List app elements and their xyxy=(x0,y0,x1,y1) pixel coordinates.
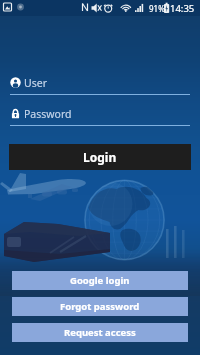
staticText: Password xyxy=(24,107,72,121)
button[interactable]: Request access xyxy=(12,323,188,342)
staticText: 91% xyxy=(149,3,165,14)
staticText: Login xyxy=(83,149,117,165)
staticText: Request access xyxy=(64,326,136,339)
button[interactable]: Forgot password xyxy=(12,297,188,316)
staticText: 14:35 xyxy=(170,2,195,15)
staticText: Forgot password xyxy=(60,300,140,313)
button[interactable]: Login xyxy=(9,144,191,170)
staticText: Google login xyxy=(70,274,130,287)
button[interactable]: Google login xyxy=(12,271,188,290)
staticText: User xyxy=(24,76,47,90)
